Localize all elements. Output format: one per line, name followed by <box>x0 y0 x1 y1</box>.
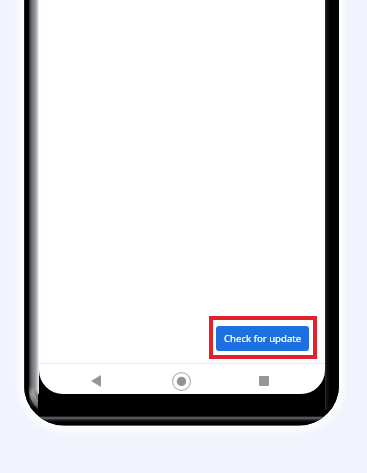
button[interactable]: Back <box>72 366 120 394</box>
staticText: Check for update <box>224 332 302 345</box>
button[interactable]: Check for update <box>216 326 309 351</box>
button[interactable]: Recent apps <box>240 366 288 394</box>
button[interactable]: Home <box>157 366 205 394</box>
